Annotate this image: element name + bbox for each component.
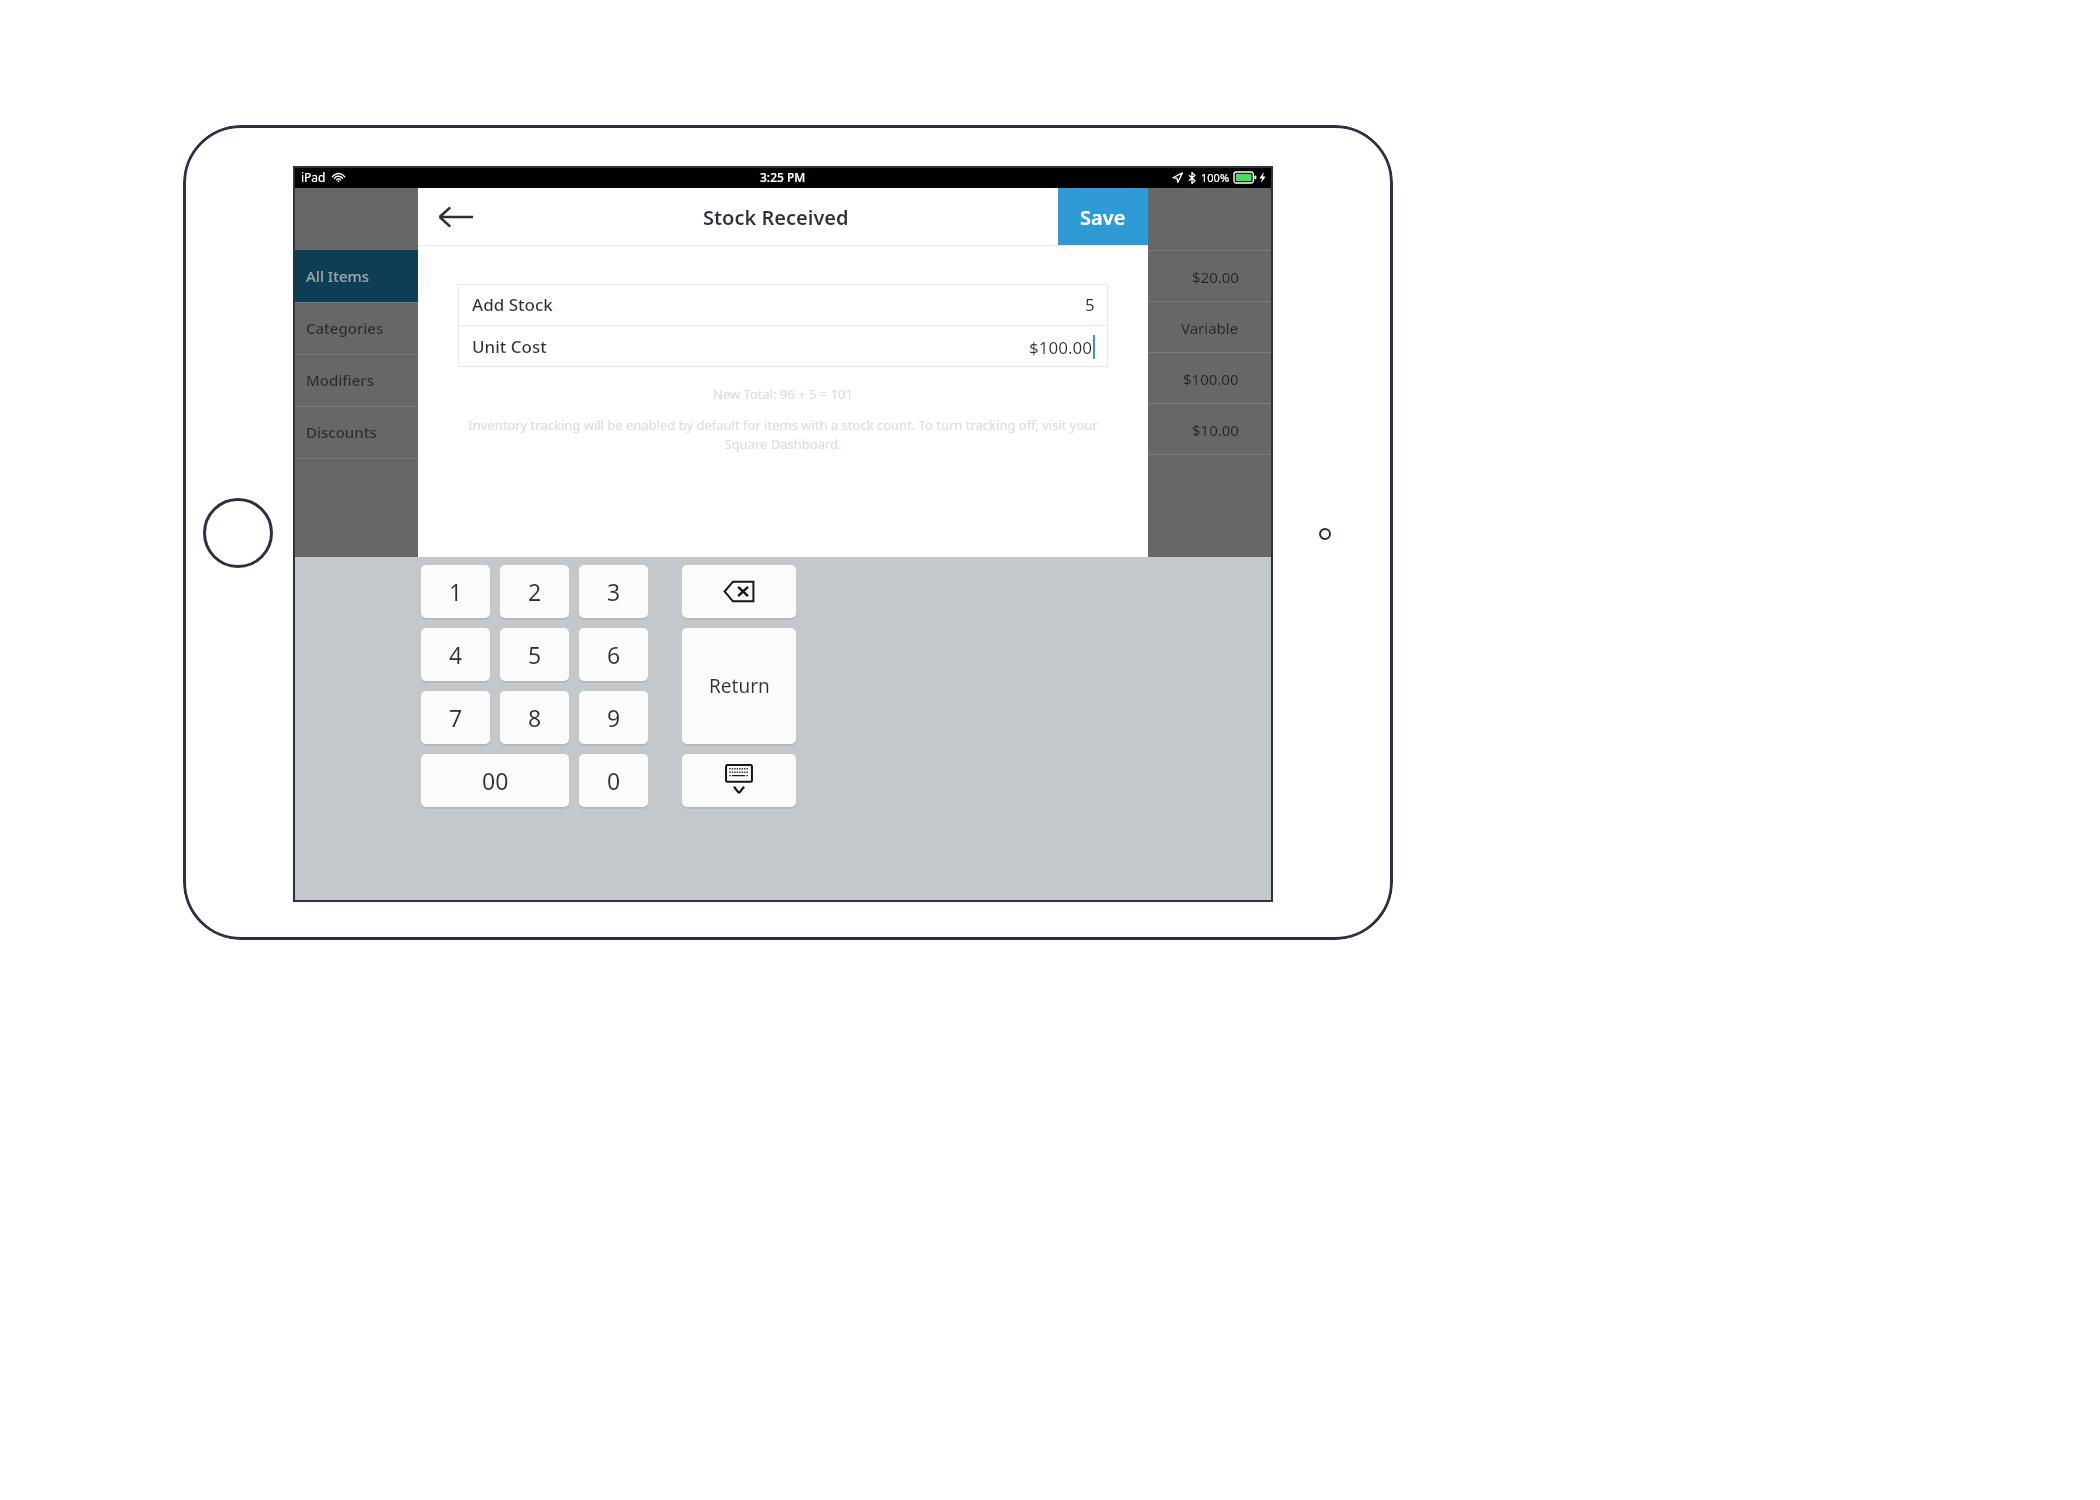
staticText: 00 (482, 765, 509, 796)
button[interactable]: Save (1058, 188, 1148, 246)
button[interactable]: Unit Cost (458, 326, 1108, 367)
staticText: 9 (607, 702, 621, 733)
button[interactable]: 6 (579, 628, 648, 681)
staticText: 3:25 PM (760, 169, 806, 185)
staticText: New Total: 96 + 5 = 101 (713, 385, 853, 403)
staticText: 8 (528, 702, 542, 733)
staticText: $10.00 (1192, 420, 1239, 440)
button[interactable]: 2 (500, 565, 569, 618)
button[interactable]: $20.00 (418, 251, 1273, 302)
staticText: 2 (528, 576, 542, 607)
button[interactable]: Categories (293, 302, 418, 354)
other: Hide keyboard (682, 754, 796, 807)
staticText: 4 (449, 639, 463, 670)
button[interactable] (682, 754, 796, 807)
staticText: iPad (301, 169, 326, 185)
staticText: $20.00 (1192, 267, 1239, 287)
button[interactable] (682, 565, 796, 618)
button[interactable]: 9 (579, 691, 648, 744)
staticText: Modifiers (306, 370, 374, 390)
staticText: $100.00 (1183, 369, 1239, 389)
button[interactable]: Modifiers (293, 354, 418, 406)
button[interactable]: 7 (421, 691, 490, 744)
staticText: Categories (306, 318, 384, 338)
staticText: 5 (528, 639, 542, 670)
staticText: 5 (1085, 293, 1095, 316)
staticText: Return (709, 673, 770, 699)
button[interactable]: Discounts (293, 406, 418, 458)
button[interactable]: Variable (418, 302, 1273, 353)
staticText: 7 (449, 702, 463, 733)
button[interactable]: 8 (500, 691, 569, 744)
staticText: $100.00 (1029, 336, 1092, 359)
button[interactable]: 00 (421, 754, 569, 807)
button[interactable]: 5 (500, 628, 569, 681)
staticText: 0 (607, 765, 621, 796)
button[interactable]: All Items (293, 250, 418, 302)
staticText: Save (1080, 204, 1126, 231)
staticText: Inventory tracking will be enabled by de… (462, 416, 1104, 453)
button[interactable]: 4 (421, 628, 490, 681)
button[interactable]: $100.00 (418, 353, 1273, 404)
button[interactable]: $10.00 (418, 404, 1273, 455)
staticText: 6 (607, 639, 621, 670)
other: Backspace (682, 565, 796, 618)
button[interactable]: 1 (421, 565, 490, 618)
staticText: Stock Received (703, 204, 849, 231)
staticText: Variable (1181, 318, 1239, 338)
staticText: 1 (449, 576, 463, 607)
staticText: Unit Cost (472, 335, 547, 358)
staticText: 3 (607, 576, 621, 607)
button[interactable]: Add Stock (458, 284, 1108, 325)
button[interactable]: 3 (579, 565, 648, 618)
staticText: Add Stock (472, 293, 553, 316)
button[interactable]: Return (682, 628, 796, 744)
button[interactable]: Back (418, 188, 493, 246)
staticText: All Items (306, 266, 369, 286)
staticText: 100% (1201, 170, 1230, 185)
button[interactable]: 0 (579, 754, 648, 807)
staticText: Discounts (306, 422, 377, 442)
